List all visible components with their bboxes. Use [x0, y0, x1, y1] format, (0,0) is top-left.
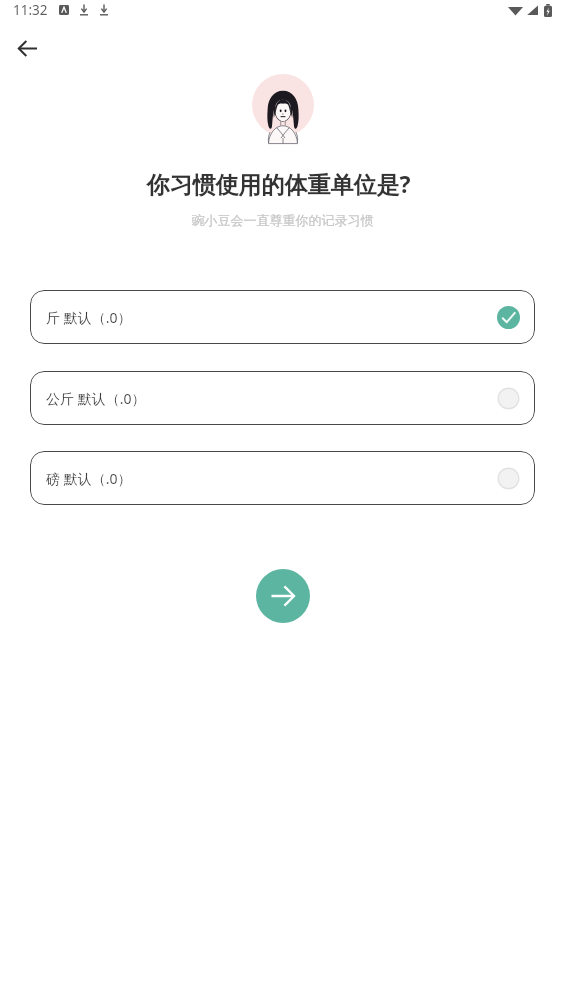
button[interactable]: 公斤 默认（.0） [30, 371, 535, 425]
button[interactable]: 斤 默认（.0） [30, 290, 535, 344]
button[interactable]: Back [11, 32, 43, 64]
staticText: 你习惯使用的体重单位是? [0, 168, 561, 199]
staticText: 公斤 默认（.0） [46, 389, 146, 408]
button[interactable]: Next [256, 569, 310, 623]
staticText: 11:32 [13, 1, 48, 19]
staticText: 磅 默认（.0） [46, 469, 132, 488]
staticText: 斤 默认（.0） [46, 308, 132, 327]
button[interactable]: 磅 默认（.0） [30, 451, 535, 505]
staticText: 豌小豆会一直尊重你的记录习惯 [0, 212, 565, 228]
